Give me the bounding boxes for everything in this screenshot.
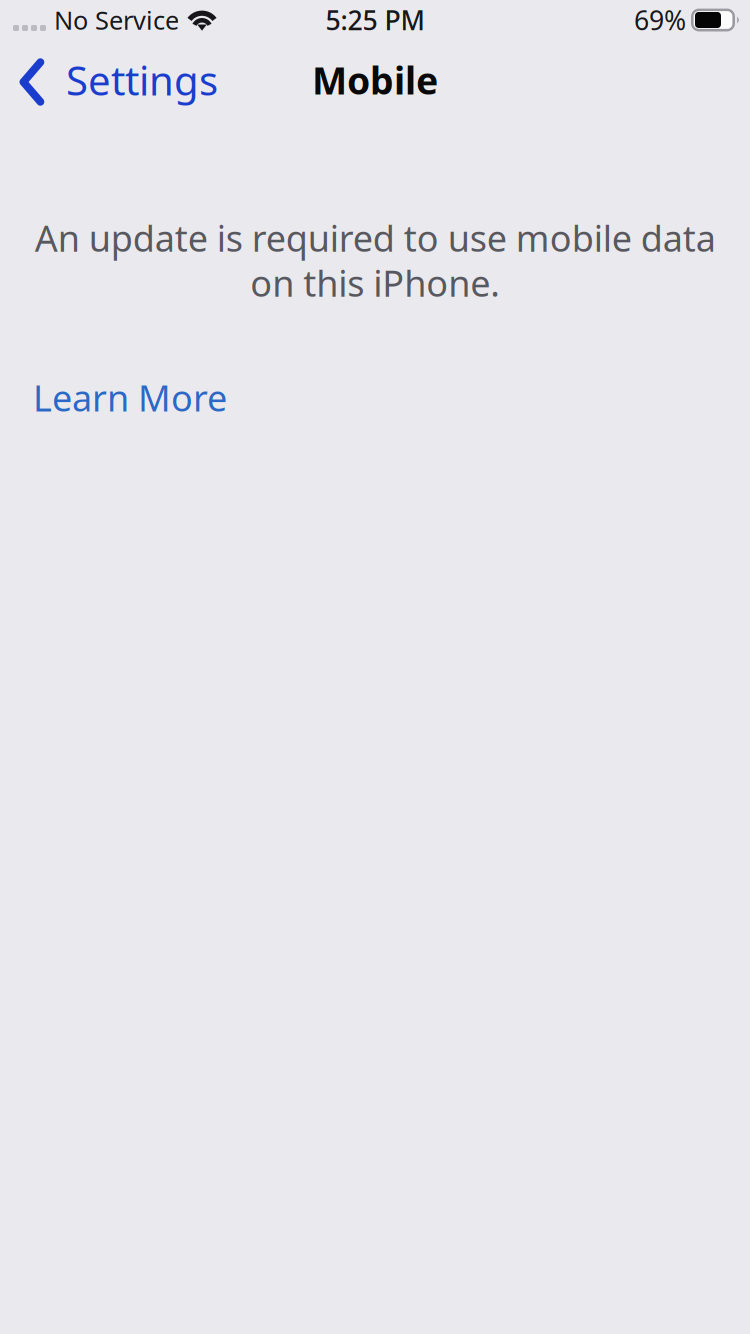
staticText: Mobile <box>312 55 438 105</box>
staticText: An update is required to use mobile data… <box>34 214 715 307</box>
button[interactable]: Learn More <box>0 356 251 440</box>
button[interactable]: Settings <box>0 42 232 118</box>
staticText: No Service <box>54 3 179 37</box>
staticText: Settings <box>66 53 218 106</box>
staticText: Learn More <box>33 374 227 421</box>
staticText: 69% <box>634 2 686 38</box>
staticText: 5:25 PM <box>325 2 424 38</box>
